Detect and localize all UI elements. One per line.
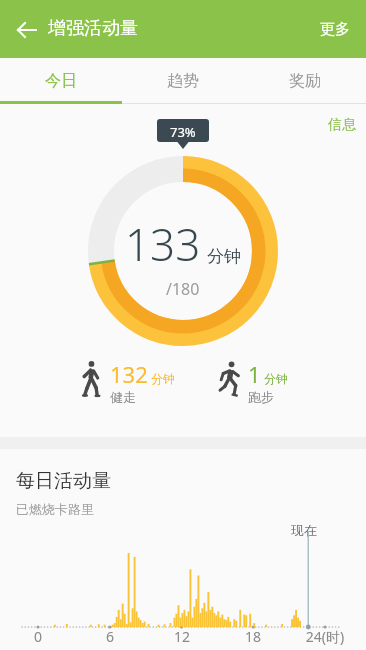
button[interactable]: 趋势 (122, 58, 244, 104)
staticText: 每日活动量 (16, 469, 111, 493)
staticText: 跑步 (248, 389, 274, 405)
staticText: 分钟 (151, 371, 175, 386)
staticText: 现在 (291, 522, 317, 538)
staticText: 分钟 (207, 246, 241, 267)
staticText: 132 (110, 359, 148, 389)
staticText: 0 (30, 627, 46, 646)
staticText: 增强活动量 (48, 17, 138, 40)
button[interactable]: 信息 (322, 112, 362, 138)
staticText: /180 (166, 278, 200, 300)
staticText: 奖励 (289, 71, 321, 91)
staticText: 已燃烧卡路里 (16, 501, 94, 517)
staticText: 更多 (320, 20, 350, 39)
button[interactable]: 更多 (312, 12, 358, 47)
staticText: 73% (170, 123, 196, 141)
staticText: 1 (248, 359, 261, 389)
staticText: 今日 (45, 71, 77, 91)
staticText: 分钟 (264, 371, 288, 386)
staticText: 趋势 (167, 71, 199, 91)
button[interactable]: 奖励 (244, 58, 366, 104)
staticText: 健走 (110, 389, 136, 405)
staticText: 24(时) (285, 627, 365, 646)
button[interactable]: Back (10, 13, 44, 47)
staticText: 6 (102, 627, 118, 646)
staticText: 12 (167, 627, 197, 646)
staticText: 133 (125, 214, 201, 274)
staticText: 信息 (328, 116, 356, 134)
staticText: 18 (238, 627, 268, 646)
button[interactable]: 今日 (0, 58, 122, 104)
